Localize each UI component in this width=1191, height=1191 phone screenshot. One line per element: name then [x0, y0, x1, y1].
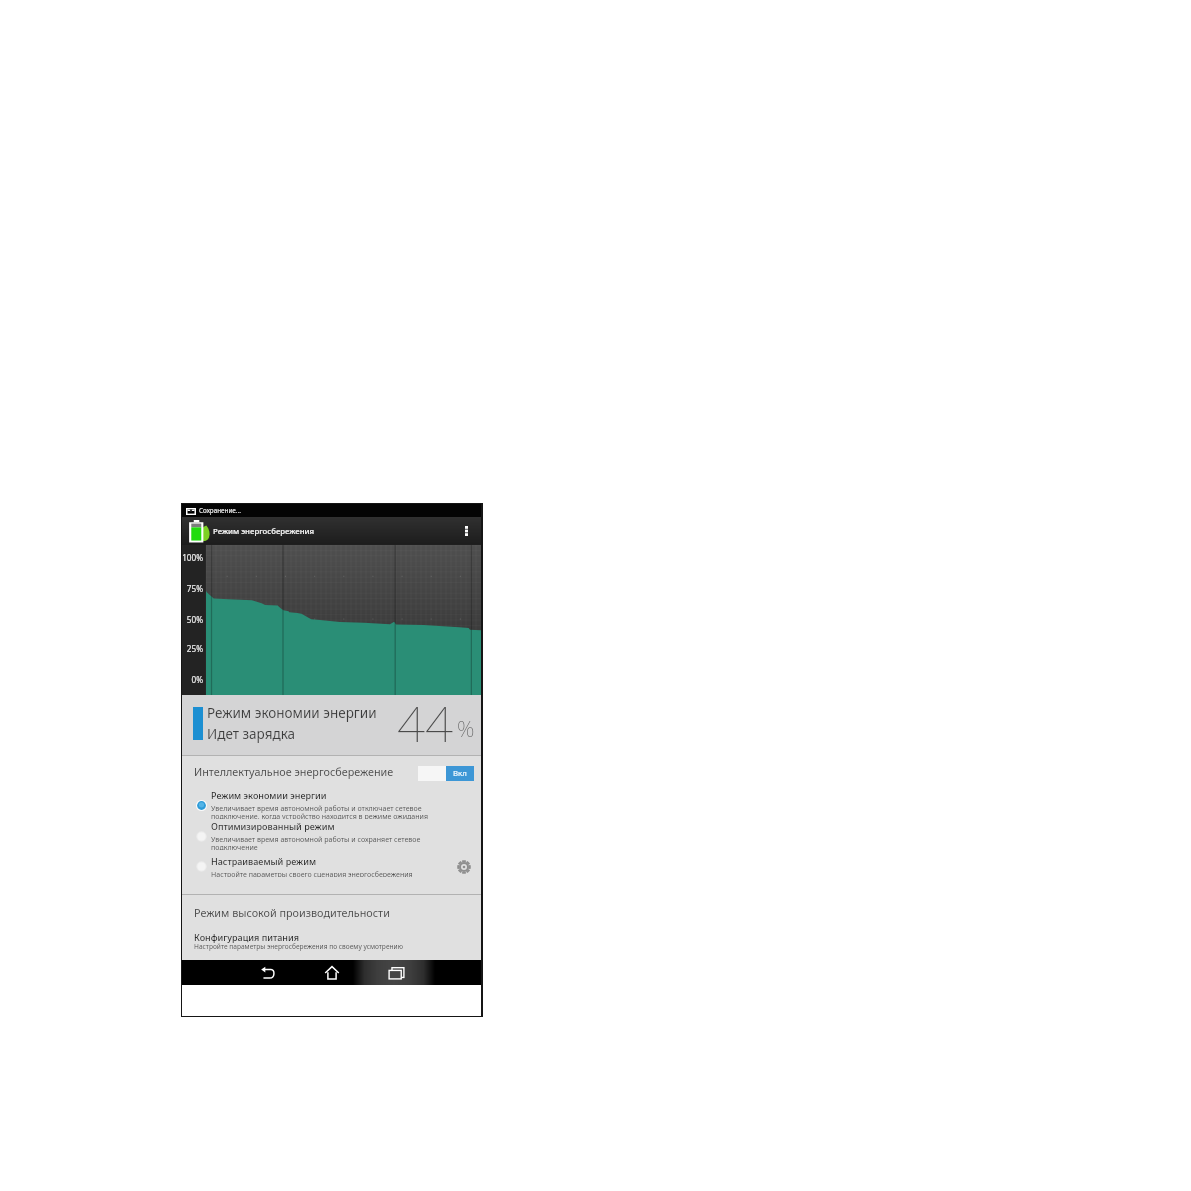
staticText: Настройте параметры своего сценария энер…	[211, 869, 413, 877]
button[interactable]: Оптимизированный режим	[182, 817, 481, 847]
staticText: Настройте параметры энергосбережения по …	[194, 942, 403, 951]
staticText: Идет зарядка	[207, 725, 296, 743]
staticText: Настраиваемый режим	[211, 855, 316, 867]
staticText: 75%	[182, 583, 203, 594]
staticText: 50%	[182, 614, 203, 625]
button[interactable]: More options	[453, 517, 480, 545]
staticText: Сохранение...	[199, 506, 241, 515]
staticText: Режим экономии энергии	[207, 704, 377, 722]
staticText: Увеличивает время автономной работы и со…	[211, 834, 421, 850]
staticText: Конфигурация питания	[194, 931, 299, 943]
staticText: %	[457, 713, 475, 743]
staticText: Увеличивает время автономной работы и от…	[211, 803, 429, 819]
button[interactable]: Back	[251, 960, 285, 985]
button[interactable]: Конфигурация питания	[182, 928, 481, 952]
button[interactable]: Smart saving toggle	[418, 766, 474, 781]
staticText: Режим энергосбережения	[213, 526, 315, 537]
staticText: Вкл	[453, 768, 467, 779]
button[interactable]: Режим экономии энергии	[182, 786, 481, 816]
staticText: 44	[397, 690, 453, 750]
staticText: Интеллектуальное энергосбережение	[194, 764, 394, 779]
button[interactable]: Home	[315, 960, 349, 985]
staticText: Оптимизированный режим	[211, 820, 335, 832]
staticText: 0%	[182, 674, 203, 685]
staticText: 100%	[182, 552, 203, 563]
button[interactable]: Recents	[366, 960, 426, 985]
button[interactable]: Settings	[453, 856, 475, 878]
staticText: Режим высокой производительности	[194, 905, 390, 920]
staticText: Режим экономии энергии	[211, 789, 327, 801]
button[interactable]: Настраиваемый режим	[182, 852, 481, 874]
staticText: 25%	[182, 643, 203, 654]
